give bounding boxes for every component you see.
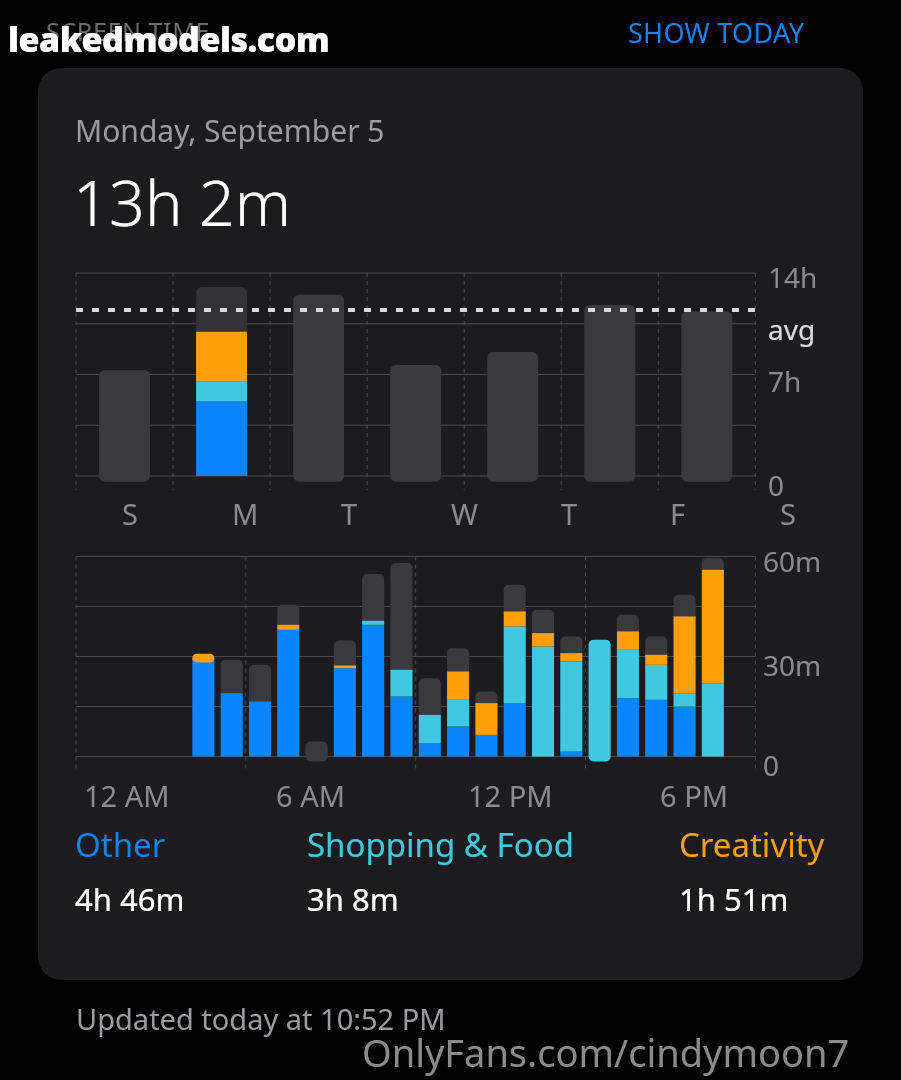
staticText: T [561,494,578,533]
staticText: 13h 2m [73,159,292,245]
button[interactable]: Other [75,822,307,920]
staticText: Other [75,822,166,867]
staticText: T [341,494,358,533]
staticText: 6 AM [276,776,345,815]
staticText: leakedmodels.com [8,16,330,62]
staticText: F [670,494,686,533]
staticText: 14h [768,258,818,296]
staticText: 3h 8m [307,878,399,920]
button[interactable]: SHOW TODAY [612,10,821,55]
button[interactable]: Monday, September 5 [38,68,863,980]
button[interactable]: Creativity [679,822,825,920]
staticText: S [780,494,796,533]
staticText: Updated today at 10:52 PM [76,999,446,1038]
staticText: 6 PM [660,776,728,815]
staticText: 4h 46m [75,878,185,920]
staticText: SHOW TODAY [628,14,805,51]
staticText: 12 PM [468,776,553,815]
staticText: 1h 51m [679,878,789,920]
staticText: Creativity [679,822,825,867]
staticText: 7h [768,362,802,400]
staticText: 12 AM [84,776,170,815]
staticText: SCREEN TIME [46,14,210,48]
staticText: 60m [763,542,822,580]
staticText: M [232,494,259,533]
staticText: avg [768,310,816,348]
staticText: Monday, September 5 [75,110,385,151]
staticText: OnlyFans.com/cindymoon7 [362,1026,850,1078]
staticText: 0 [763,746,780,784]
staticText: W [451,494,478,533]
staticText: Shopping & Food [307,822,574,867]
button[interactable]: Shopping & Food [307,822,679,920]
staticText: 0 [768,466,785,504]
staticText: 30m [763,646,822,684]
staticText: S [122,494,138,533]
